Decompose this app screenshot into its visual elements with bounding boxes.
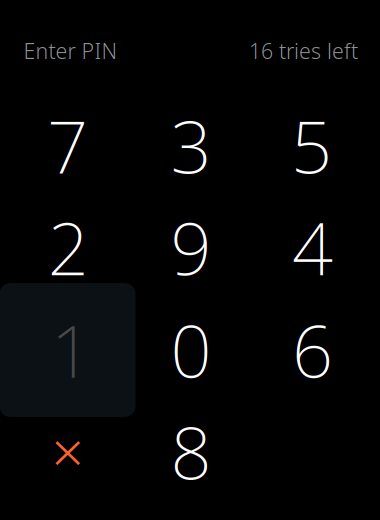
- staticText: 2: [48, 200, 89, 295]
- staticText: 0: [170, 302, 211, 398]
- button[interactable]: 5: [252, 95, 374, 197]
- button[interactable]: 2: [7, 196, 129, 298]
- staticText: 8: [170, 404, 211, 499]
- button[interactable]: Delete: [7, 401, 129, 503]
- button[interactable]: 6: [252, 299, 374, 401]
- staticText: Enter PIN: [23, 37, 117, 65]
- button[interactable]: 1: [7, 299, 129, 401]
- staticText: 5: [291, 98, 332, 193]
- button[interactable]: 8: [130, 401, 252, 503]
- staticText: 16 tries left: [249, 37, 358, 65]
- staticText: 3: [170, 98, 211, 193]
- button[interactable]: 0: [130, 299, 252, 401]
- button[interactable]: 9: [130, 196, 252, 298]
- staticText: 4: [292, 200, 333, 295]
- button[interactable]: 7: [7, 95, 129, 197]
- staticText: 9: [170, 200, 211, 295]
- staticText: 6: [292, 302, 333, 398]
- button[interactable]: 3: [130, 95, 252, 197]
- staticText: 1: [51, 302, 92, 398]
- staticText: 7: [47, 98, 88, 193]
- button[interactable]: 4: [252, 196, 374, 298]
